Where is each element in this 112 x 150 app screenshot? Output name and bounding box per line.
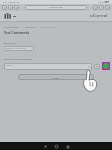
button[interactable]: Recents <box>64 143 71 150</box>
button[interactable]: uControl logo <box>4 13 11 20</box>
staticText: Test Mode <box>4 41 16 44</box>
button[interactable]: Send command <box>102 62 110 70</box>
staticText: uControl <box>90 13 108 19</box>
staticText: / <box>22 25 23 28</box>
button[interactable]: uControl <box>90 13 108 19</box>
staticText: HVAC <box>6 67 13 70</box>
button[interactable]: Back <box>42 143 49 150</box>
staticText: 100% <box>98 1 104 4</box>
button[interactable]: ucontrol.app <box>25 5 87 10</box>
staticText: / <box>37 25 38 28</box>
button[interactable]: Send <box>18 74 94 80</box>
staticText: uControl <box>25 25 35 28</box>
button[interactable]: Bookmark <box>93 5 98 10</box>
staticText: Set <box>96 65 99 68</box>
staticText: Send <box>53 76 59 79</box>
staticText: Device <box>6 64 12 67</box>
button[interactable]: Share <box>99 5 104 10</box>
button[interactable]: Forward <box>8 5 13 10</box>
button[interactable]: Reload <box>14 5 19 10</box>
button[interactable]: Set <box>94 64 100 69</box>
staticText: Control Panel <box>4 25 20 28</box>
staticText: ucontrol.app <box>49 6 63 9</box>
staticText: Ready to transmit <box>6 47 26 50</box>
staticText: 9:41 Mon 8 Nov <box>3 1 20 4</box>
staticText: Test Commands <box>4 31 30 35</box>
button[interactable]: Ready to transmit <box>4 46 34 51</box>
button[interactable]: uControl <box>25 25 35 28</box>
button[interactable]: Home <box>53 143 60 150</box>
staticText: Pick the device you want <box>4 57 33 60</box>
button[interactable]: Back <box>2 5 7 10</box>
button[interactable]: Device <box>4 63 92 70</box>
button[interactable]: Control Panel <box>4 25 20 28</box>
staticText: uControl Tools <box>40 25 57 28</box>
button[interactable]: Tabs <box>105 5 110 10</box>
